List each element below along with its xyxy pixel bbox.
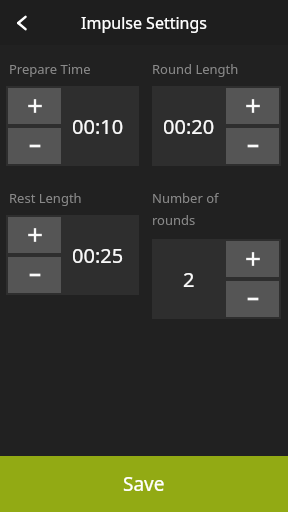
staticText: 2 (183, 266, 195, 293)
button[interactable]: Save (0, 456, 288, 512)
button[interactable]: Decrease number of rounds (226, 281, 279, 317)
staticText: 00:10 (72, 113, 124, 140)
button[interactable]: 00:20 (152, 86, 281, 166)
staticText: 00:20 (163, 113, 215, 140)
button[interactable]: Decrease round length (226, 128, 279, 164)
button[interactable]: Increase number of rounds (226, 241, 279, 277)
button[interactable]: 2 (152, 239, 281, 319)
staticText: Impulse Settings (0, 12, 288, 34)
button[interactable]: Increase rest length (6, 215, 139, 295)
button[interactable]: Increase round length (226, 88, 279, 124)
staticText: Save (123, 471, 165, 497)
button[interactable]: Back (2, 0, 42, 45)
staticText: Prepare Time (9, 60, 91, 78)
staticText: Round Length (152, 60, 239, 78)
button[interactable]: Increase prepare time (8, 88, 61, 124)
staticText: 00:25 (72, 242, 124, 269)
button[interactable]: Increase prepare time (6, 86, 139, 166)
button[interactable]: Decrease rest length (8, 257, 61, 293)
staticText: Rest Length (9, 189, 82, 207)
button[interactable]: Increase rest length (8, 217, 61, 253)
staticText: Number of rounds (152, 189, 262, 229)
button[interactable]: Decrease prepare time (8, 128, 61, 164)
